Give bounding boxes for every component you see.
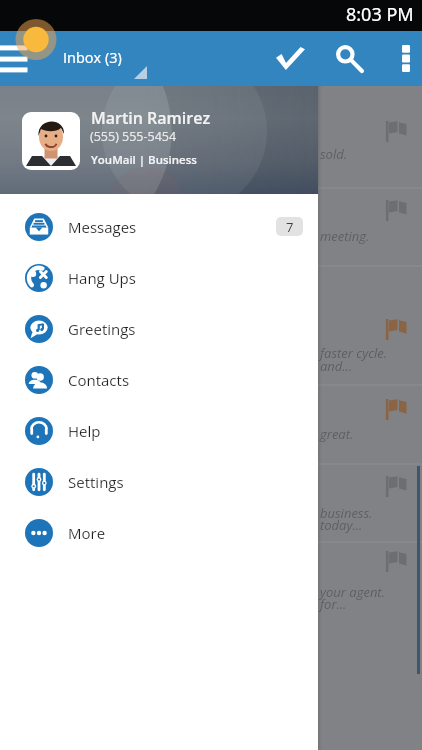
- staticText: Messages: [68, 217, 137, 237]
- button[interactable]: Open navigation drawer: [0, 31, 30, 86]
- button[interactable]: More: [0, 507, 318, 558]
- button[interactable]: Search: [321, 31, 377, 86]
- staticText: Inbox (3): [63, 48, 122, 68]
- staticText: Greetings: [68, 319, 136, 339]
- button[interactable]: Greetings: [0, 303, 318, 354]
- staticText: Hang Ups: [68, 268, 136, 288]
- staticText: Contacts: [68, 370, 130, 390]
- button[interactable]: Contacts: [0, 354, 318, 405]
- staticText: 7: [286, 218, 294, 236]
- button[interactable]: Select all: [266, 31, 315, 86]
- staticText: Help: [68, 421, 101, 441]
- staticText: and...: [320, 357, 353, 375]
- staticText: (555) 555-5454: [90, 128, 177, 145]
- staticText: business.: [320, 504, 373, 522]
- staticText: YouMail | Business: [91, 152, 197, 168]
- staticText: for...: [320, 595, 347, 613]
- staticText: 8:03 PM: [346, 2, 414, 27]
- staticText: today...: [320, 516, 363, 534]
- button[interactable]: Hang Ups: [0, 252, 318, 303]
- staticText: great.: [320, 425, 354, 443]
- staticText: meeting.: [320, 227, 370, 245]
- staticText: sold.: [320, 145, 347, 163]
- staticText: faster cycle.: [320, 344, 388, 362]
- staticText: Martin Ramirez: [91, 107, 211, 129]
- staticText: More: [68, 523, 106, 543]
- staticText: Settings: [68, 472, 124, 492]
- button[interactable]: Messages: [0, 201, 318, 252]
- button[interactable]: Help: [0, 405, 318, 456]
- button[interactable]: Settings: [0, 456, 318, 507]
- staticText: your agent.: [320, 583, 385, 601]
- button[interactable]: More options: [386, 31, 422, 86]
